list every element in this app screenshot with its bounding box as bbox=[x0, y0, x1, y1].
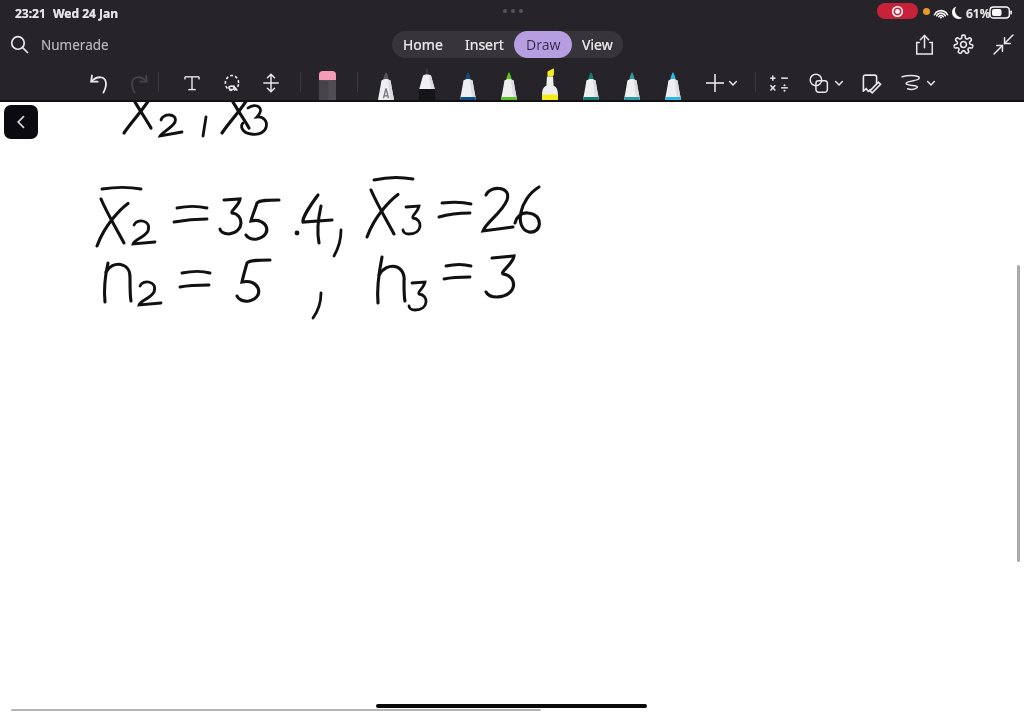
staticText: Numerade bbox=[41, 36, 109, 54]
button[interactable]: Pen highlighter bbox=[541, 68, 559, 102]
button[interactable]: More ink bbox=[925, 77, 937, 89]
button[interactable]: Pen teal bbox=[582, 71, 600, 102]
button[interactable]: Screen recording bbox=[877, 3, 918, 19]
staticText: 61% bbox=[966, 5, 991, 21]
button[interactable]: Text bbox=[181, 72, 203, 94]
staticText: Draw bbox=[526, 35, 561, 54]
button[interactable]: Ink style bbox=[901, 72, 923, 94]
button[interactable]: Spacing bbox=[260, 72, 282, 94]
button[interactable]: Numerade bbox=[10, 35, 109, 54]
button[interactable]: Redo bbox=[128, 72, 150, 94]
button[interactable]: Lasso bbox=[221, 72, 243, 94]
staticText: Wed 24 Jan bbox=[53, 5, 119, 21]
button[interactable]: More pens bbox=[727, 77, 739, 89]
button[interactable]: Settings bbox=[953, 34, 974, 55]
button[interactable]: Shapes bbox=[808, 72, 830, 94]
button[interactable]: Back bbox=[4, 105, 38, 139]
staticText: 23:21 bbox=[15, 5, 46, 21]
button[interactable]: Insert bbox=[455, 31, 513, 58]
button[interactable]: Sticky note bbox=[859, 72, 881, 94]
staticText: Home bbox=[403, 35, 443, 54]
button[interactable]: Add pen bbox=[705, 73, 725, 93]
button[interactable]: Undo bbox=[88, 72, 110, 94]
staticText: View bbox=[582, 35, 613, 54]
button[interactable]: View bbox=[573, 31, 621, 58]
button[interactable]: Collapse bbox=[993, 34, 1014, 55]
button[interactable]: Pen teal2 bbox=[623, 71, 641, 102]
button[interactable]: More shapes bbox=[833, 77, 845, 89]
staticText: Insert bbox=[465, 35, 504, 54]
button[interactable]: Share bbox=[914, 34, 935, 55]
button[interactable]: Home bbox=[396, 31, 450, 58]
button[interactable]: Pen marker bbox=[418, 68, 436, 102]
button[interactable]: Math bbox=[768, 72, 790, 94]
button[interactable]: Draw bbox=[514, 31, 572, 58]
button[interactable]: Pen cyan bbox=[664, 71, 682, 102]
button[interactable]: Pen blue bbox=[459, 71, 477, 102]
button[interactable]: Pen green bbox=[500, 71, 518, 102]
button[interactable]: Eraser bbox=[319, 71, 336, 101]
button[interactable]: Pen A bbox=[377, 71, 395, 102]
